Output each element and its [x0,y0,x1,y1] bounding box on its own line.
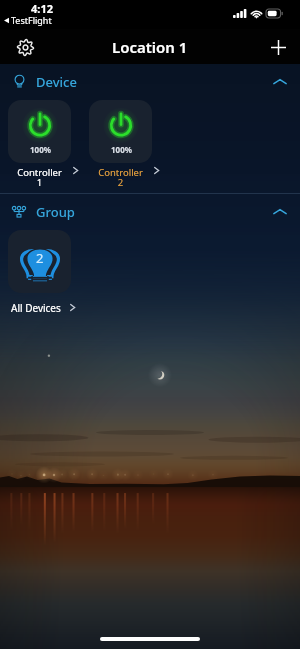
button[interactable]: Controller 1 [8,163,80,193]
staticText: 4:12 [31,1,53,16]
staticText: 100% [111,144,132,155]
button[interactable]: All Devices [11,293,77,322]
button[interactable]: 100% [8,100,71,163]
staticText: 2 [36,249,44,267]
staticText: Controller 1 [8,166,71,189]
staticText: Device [36,73,77,91]
button[interactable]: 2 [8,230,71,293]
button[interactable]: Controller 2 [89,163,161,193]
staticText: All Devices [11,301,61,315]
button[interactable]: Group [0,194,300,230]
staticText: Group [36,203,75,221]
button[interactable]: Device [0,64,300,100]
staticText: Location 1 [112,37,188,57]
button[interactable]: Add [262,31,294,63]
staticText: TestFlight [11,14,52,26]
staticText: 100% [30,144,51,155]
button[interactable]: 100% [89,100,152,163]
staticText: Controller 2 [89,166,152,189]
button[interactable]: Settings [9,31,41,63]
